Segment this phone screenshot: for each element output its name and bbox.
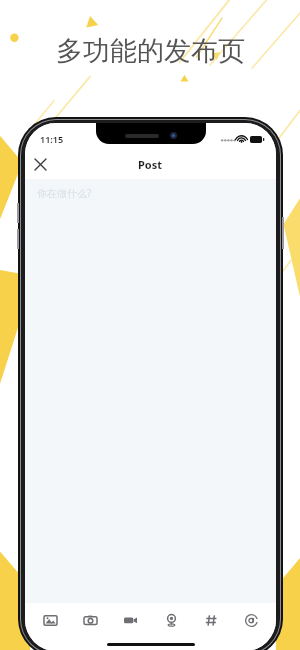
staticText: 多功能的发布页 — [56, 34, 245, 68]
button[interactable]: Hashtag — [200, 609, 222, 631]
button[interactable]: Camera — [79, 609, 101, 631]
button[interactable]: Location — [160, 609, 182, 631]
staticText: 11:15 — [40, 133, 64, 145]
button[interactable]: Close — [25, 149, 55, 179]
staticText: Post — [138, 157, 163, 172]
staticText: 你在做什么? — [37, 186, 92, 200]
button[interactable]: Video — [119, 609, 141, 631]
button[interactable]: Mention — [240, 609, 262, 631]
button[interactable]: Photo — [39, 609, 61, 631]
